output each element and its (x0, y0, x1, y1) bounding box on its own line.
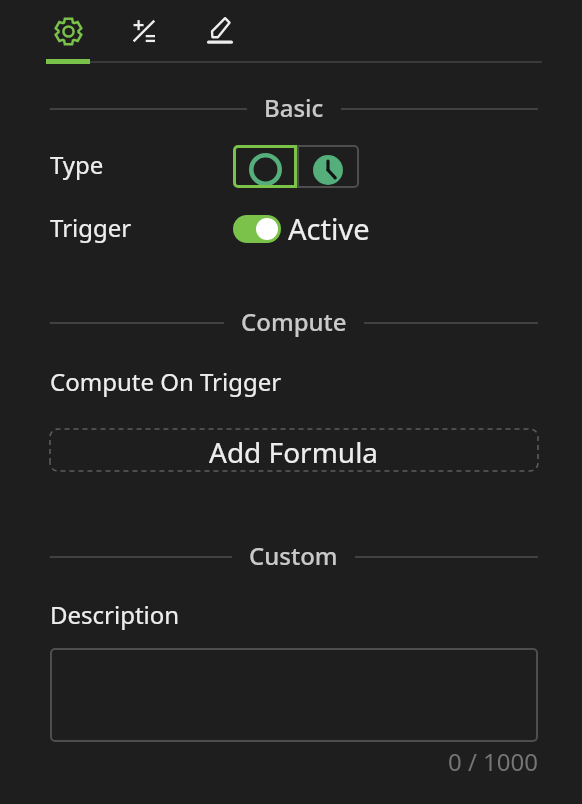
staticText: Compute On Trigger (50, 365, 282, 398)
staticText: Description (50, 598, 180, 631)
staticText: Basic (264, 91, 324, 124)
button[interactable]: Timer (297, 145, 359, 188)
staticText: Compute (241, 305, 347, 338)
staticText: Active (288, 209, 370, 248)
button[interactable]: Formulas (124, 11, 164, 51)
staticText: 0 / 1000 (0, 745, 538, 778)
button[interactable]: Description input (50, 648, 538, 742)
button[interactable]: Active (233, 209, 370, 248)
staticText: Custom (249, 539, 338, 572)
staticText: Trigger (50, 211, 132, 244)
staticText: Type (50, 148, 104, 181)
button[interactable]: Counter (233, 145, 297, 188)
button[interactable]: Edit (200, 11, 240, 51)
button[interactable]: Add Formula (50, 429, 538, 471)
button[interactable]: Settings (48, 11, 88, 51)
staticText: Add Formula (209, 433, 379, 471)
